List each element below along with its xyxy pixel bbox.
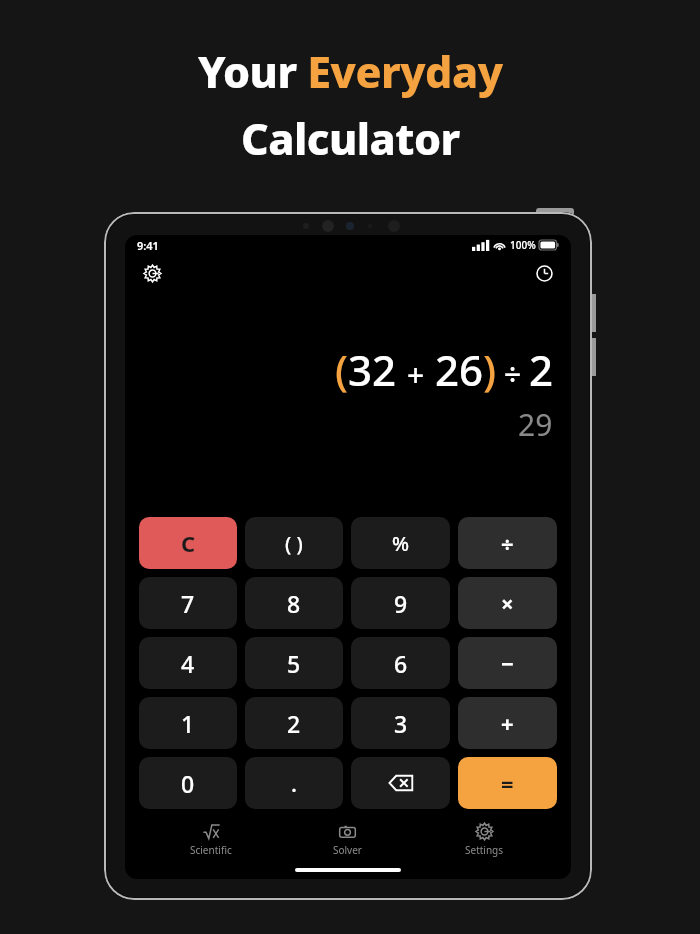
staticText: 8 (287, 588, 301, 619)
staticText: Your Everyday (198, 42, 503, 101)
button[interactable]: 2 (245, 697, 343, 749)
button[interactable]: C (139, 517, 237, 569)
button[interactable]: Settings (416, 821, 553, 859)
staticText: − (501, 648, 514, 678)
staticText: 5 (287, 648, 301, 679)
staticText: 0 (181, 768, 195, 799)
button[interactable]: 0 (139, 757, 237, 809)
staticText: = (501, 768, 514, 798)
staticText: Settings (465, 843, 504, 857)
staticText: Solver (333, 843, 362, 857)
button[interactable]: 1 (139, 697, 237, 749)
button[interactable]: History (529, 258, 559, 288)
staticText: . (291, 768, 297, 798)
staticText: C (181, 528, 196, 558)
staticText: 9:41 (137, 238, 159, 253)
staticText: 2 (287, 708, 301, 739)
staticText: ÷ (501, 528, 514, 558)
button[interactable]: 6 (351, 637, 450, 689)
button[interactable]: Backspace (351, 757, 450, 809)
staticText: + (501, 708, 514, 738)
staticText: Scientific (190, 843, 232, 857)
button[interactable]: × (458, 577, 557, 629)
button[interactable]: + (458, 697, 557, 749)
staticText: (32 + 26) ÷ 2 (334, 341, 553, 398)
button[interactable]: ÷ (458, 517, 557, 569)
button[interactable]: 8 (245, 577, 343, 629)
staticText: ( ) (285, 530, 303, 557)
staticText: Calculator (241, 109, 460, 168)
button[interactable]: . (245, 757, 343, 809)
button[interactable]: Solver (279, 821, 416, 859)
staticText: 29 (518, 404, 553, 445)
staticText: 7 (181, 588, 195, 619)
staticText: 100% (510, 238, 536, 252)
button[interactable]: % (351, 517, 450, 569)
button[interactable]: − (458, 637, 557, 689)
button[interactable]: Theme settings (137, 258, 167, 288)
staticText: 1 (181, 708, 195, 739)
button[interactable]: Scientific (143, 821, 279, 859)
staticText: % (392, 530, 410, 557)
button[interactable]: ( ) (245, 517, 343, 569)
button[interactable]: 5 (245, 637, 343, 689)
staticText: × (501, 588, 514, 618)
button[interactable]: = (458, 757, 557, 809)
button[interactable]: 3 (351, 697, 450, 749)
button[interactable]: 9 (351, 577, 450, 629)
staticText: 9 (394, 588, 408, 619)
staticText: 6 (394, 648, 408, 679)
staticText: 3 (394, 708, 408, 739)
button[interactable]: 7 (139, 577, 237, 629)
button[interactable]: 4 (139, 637, 237, 689)
staticText: 4 (181, 648, 195, 679)
